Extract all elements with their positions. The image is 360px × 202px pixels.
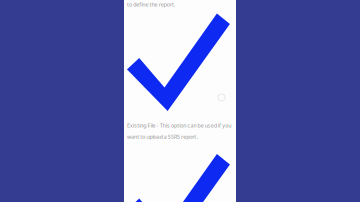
staticText: Existing File - This option can be used … <box>127 122 231 129</box>
staticText: want to upload a SSRS report. <box>127 133 197 140</box>
staticText: to define the report. <box>127 1 175 8</box>
